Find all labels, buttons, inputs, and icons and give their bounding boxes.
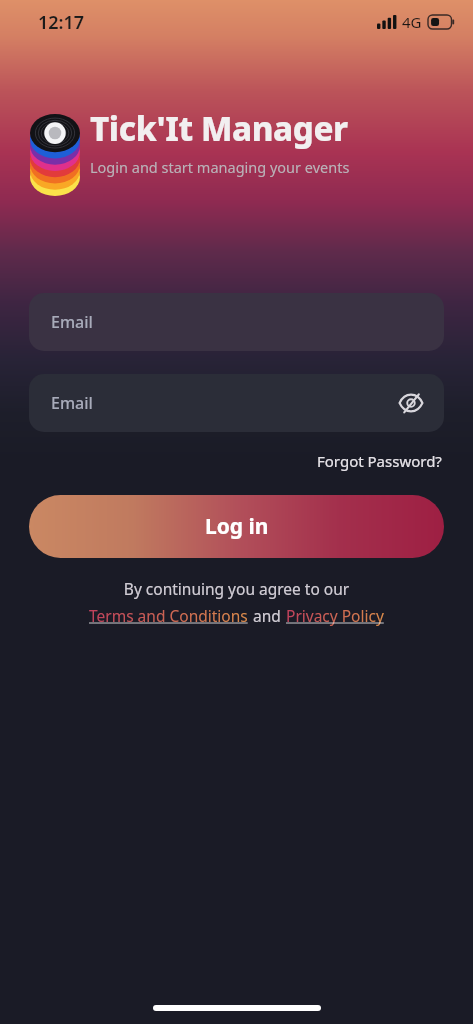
button[interactable]: Terms and Conditions: [88, 605, 249, 626]
staticText: Forgot Password?: [317, 451, 442, 471]
staticText: 12:17: [38, 10, 85, 35]
staticText: Tick'It Manager: [90, 106, 348, 151]
staticText: 4G: [402, 12, 422, 32]
staticText: Terms and Conditions: [89, 605, 248, 626]
staticText: Email: [51, 392, 93, 414]
button[interactable]: Log in: [29, 495, 444, 558]
staticText: Login and start managing your events: [90, 157, 350, 177]
button[interactable]: Forgot Password?: [315, 449, 444, 473]
staticText: Privacy Policy: [286, 605, 384, 626]
staticText: and: [249, 605, 285, 626]
staticText: Log in: [205, 512, 269, 541]
button[interactable]: Email: [29, 374, 444, 432]
button[interactable]: Show password: [392, 384, 430, 422]
staticText: By continuing you agree to our: [0, 578, 473, 599]
staticText: Email: [51, 311, 93, 333]
button[interactable]: Privacy Policy: [285, 605, 385, 626]
button[interactable]: Email: [29, 293, 444, 351]
